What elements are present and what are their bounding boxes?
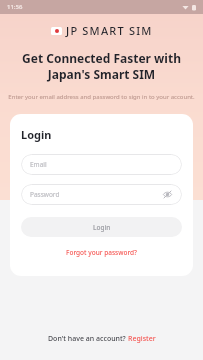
staticText: 11:56 — [7, 3, 23, 11]
staticText: Get Connected Faster with Japan's Smart … — [14, 50, 189, 82]
button[interactable]: Email — [21, 154, 182, 175]
staticText: Enter your email address and password to… — [8, 93, 195, 101]
button[interactable]: Password — [21, 184, 182, 205]
staticText: Login — [93, 223, 111, 232]
staticText: Email — [30, 160, 47, 169]
staticText: Password — [30, 190, 60, 199]
button[interactable]: Login — [21, 217, 182, 237]
staticText: Don't have an account? — [48, 334, 128, 344]
staticText: JP SMART SIM — [66, 23, 153, 38]
button[interactable]: Show password — [162, 189, 173, 200]
button[interactable]: Register — [128, 334, 156, 344]
staticText: Login — [21, 127, 52, 142]
button[interactable]: Forgot your password? — [64, 246, 140, 259]
